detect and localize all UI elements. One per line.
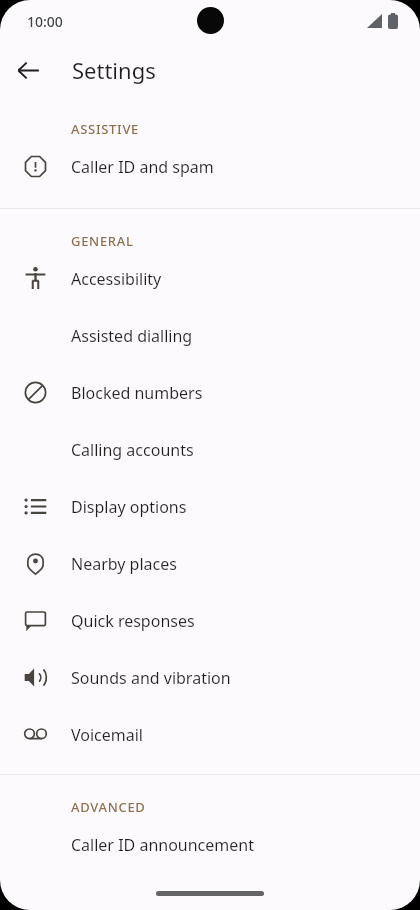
staticText: Settings — [72, 55, 156, 85]
staticText: Voicemail — [71, 724, 143, 746]
button[interactable]: Blocked numbers — [0, 364, 420, 421]
button[interactable]: Nearby places — [0, 535, 420, 592]
staticText: 10:00 — [27, 12, 63, 31]
button[interactable]: Quick responses — [0, 592, 420, 649]
button[interactable]: Sounds and vibration — [0, 649, 420, 706]
staticText: Sounds and vibration — [71, 667, 231, 689]
staticText: Assisted dialling — [71, 325, 193, 347]
button[interactable]: Caller ID and spam — [0, 138, 420, 195]
button[interactable]: Assisted dialling — [0, 307, 420, 364]
staticText: Calling accounts — [71, 439, 194, 461]
staticText: Caller ID and spam — [71, 156, 214, 178]
staticText: Caller ID announcement — [71, 834, 254, 856]
staticText: Display options — [71, 496, 187, 518]
staticText: ASSISTIVE — [71, 120, 140, 138]
staticText: GENERAL — [71, 232, 134, 250]
button[interactable]: Accessibility — [0, 250, 420, 307]
button[interactable]: Voicemail — [0, 706, 420, 763]
button[interactable]: Caller ID announcement — [0, 816, 420, 873]
staticText: Blocked numbers — [71, 382, 203, 404]
staticText: Quick responses — [71, 610, 195, 632]
staticText: Accessibility — [71, 268, 162, 290]
button[interactable]: Back — [6, 48, 50, 92]
staticText: Nearby places — [71, 553, 177, 575]
staticText: ADVANCED — [71, 798, 146, 816]
button[interactable]: Display options — [0, 478, 420, 535]
button[interactable]: Calling accounts — [0, 421, 420, 478]
